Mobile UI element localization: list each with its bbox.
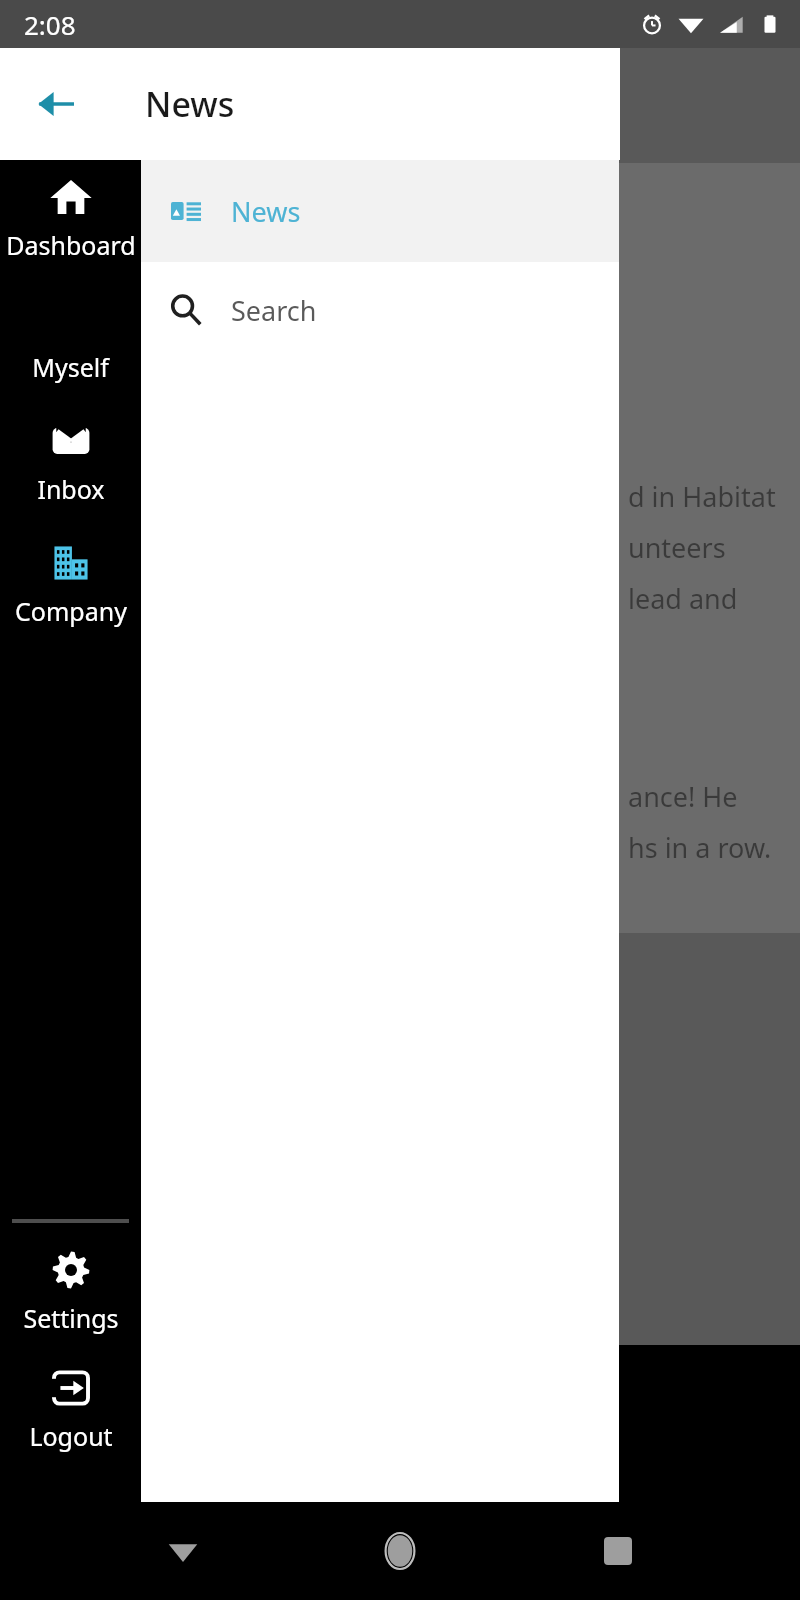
staticText: unteers	[628, 529, 726, 566]
button[interactable]: Company	[0, 540, 141, 628]
button[interactable]: Settings	[0, 1247, 141, 1335]
staticText: Myself	[32, 350, 109, 384]
staticText: lead and	[628, 580, 738, 617]
button[interactable]: Logout	[0, 1365, 141, 1453]
staticText: Company	[15, 594, 127, 628]
staticText: Settings	[23, 1301, 119, 1335]
staticText: Dashboard	[6, 228, 136, 262]
staticText: Logout	[29, 1419, 113, 1453]
button[interactable]: Inbox	[0, 418, 141, 506]
staticText: ance! He	[628, 778, 738, 815]
button[interactable]: Recents	[583, 1516, 653, 1586]
staticText: 2:08	[24, 7, 76, 42]
staticText: News	[145, 81, 235, 127]
button[interactable]: Dashboard	[0, 160, 141, 262]
button[interactable]: News	[141, 160, 619, 262]
button[interactable]: Back	[148, 1516, 218, 1586]
button[interactable]: Search	[141, 262, 619, 358]
staticText: d in Habitat	[628, 478, 776, 515]
staticText: Search	[231, 292, 317, 329]
staticText: News	[231, 193, 301, 230]
button[interactable]: Home	[365, 1516, 435, 1586]
button[interactable]: Back	[28, 76, 84, 132]
staticText: hs in a row.	[628, 829, 772, 866]
staticText: Inbox	[37, 472, 105, 506]
button[interactable]: Myself	[0, 296, 141, 384]
